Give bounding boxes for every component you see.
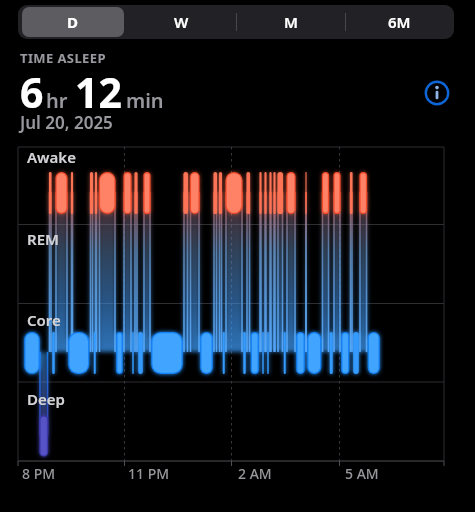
staticText: Awake — [27, 147, 76, 167]
staticText: Core — [27, 310, 61, 330]
staticText: D — [67, 12, 78, 32]
button[interactable]: D — [18, 5, 127, 39]
staticText: M — [284, 12, 298, 32]
button[interactable]: M — [236, 5, 345, 39]
button[interactable]: 6M — [345, 5, 454, 39]
staticText: TIME ASLEEP — [20, 49, 106, 67]
staticText: 2 AM — [238, 464, 272, 483]
staticText: 8 PM — [22, 464, 56, 483]
staticText: 11 PM — [128, 464, 170, 483]
staticText: hr — [46, 87, 68, 114]
button[interactable] — [22, 7, 124, 37]
staticText: REM — [27, 229, 59, 249]
staticText: 6 — [20, 64, 44, 120]
staticText: W — [174, 12, 189, 32]
staticText: 12 — [75, 64, 122, 120]
staticText: Deep — [27, 389, 65, 409]
staticText: min — [126, 87, 164, 114]
button[interactable] — [424, 80, 450, 106]
staticText: 5 AM — [345, 464, 379, 483]
button[interactable]: W — [127, 5, 236, 39]
staticText: 6M — [388, 12, 411, 32]
staticText: Jul 20, 2025 — [20, 111, 113, 134]
